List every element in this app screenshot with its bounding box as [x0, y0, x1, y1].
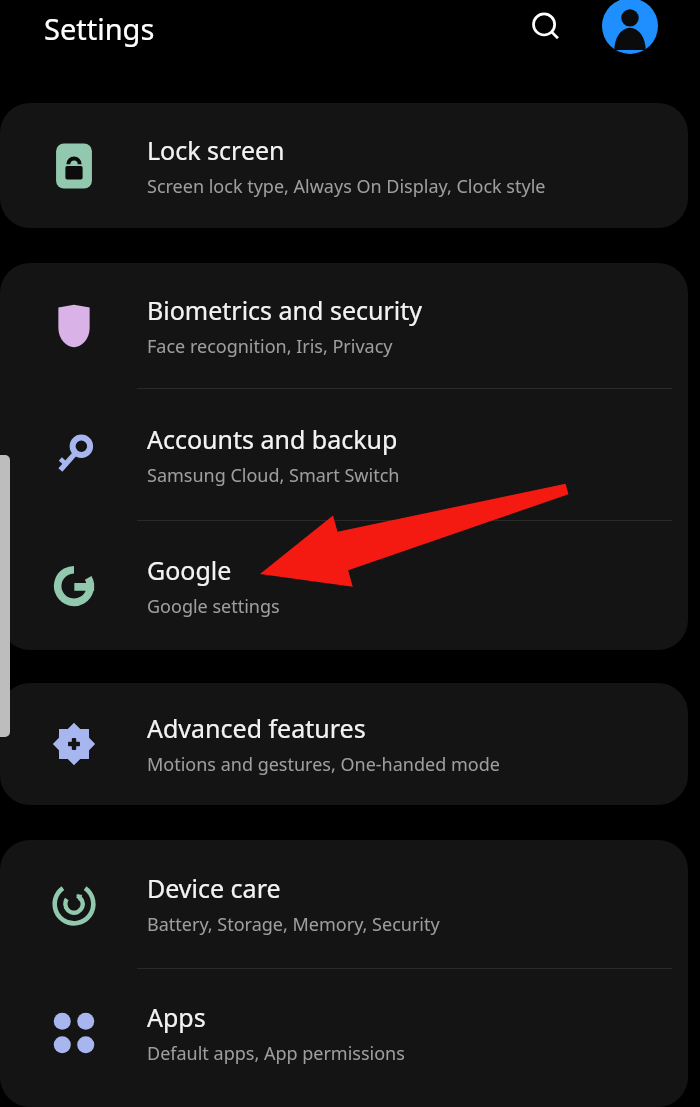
staticText: Google: [147, 553, 232, 587]
staticText: Apps: [147, 1000, 206, 1034]
staticText: Google settings: [147, 594, 280, 619]
staticText: Advanced features: [147, 711, 366, 745]
button[interactable]: Device care: [0, 840, 688, 968]
button[interactable]: Apps: [0, 969, 688, 1097]
staticText: Motions and gestures, One-handed mode: [147, 752, 500, 777]
button[interactable]: Biometrics and security: [0, 263, 688, 388]
button[interactable]: Search: [519, 0, 573, 54]
staticText: Lock screen: [147, 133, 285, 167]
staticText: Accounts and backup: [147, 422, 398, 456]
button[interactable]: Advanced features: [0, 683, 688, 805]
staticText: Default apps, App permissions: [147, 1041, 405, 1066]
button[interactable]: Google: [0, 521, 688, 650]
staticText: Screen lock type, Always On Display, Clo…: [147, 174, 546, 199]
staticText: Settings: [44, 9, 155, 48]
button[interactable]: Account: [602, 0, 658, 54]
staticText: Device care: [147, 871, 281, 905]
staticText: Face recognition, Iris, Privacy: [147, 334, 393, 359]
staticText: Samsung Cloud, Smart Switch: [147, 463, 400, 488]
button[interactable]: Accounts and backup: [0, 389, 688, 520]
staticText: Biometrics and security: [147, 293, 423, 327]
staticText: Battery, Storage, Memory, Security: [147, 912, 440, 937]
button[interactable]: Lock screen: [0, 103, 688, 228]
